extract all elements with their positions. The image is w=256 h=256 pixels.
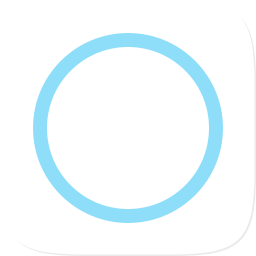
button[interactable]: Ring — [33, 33, 223, 223]
